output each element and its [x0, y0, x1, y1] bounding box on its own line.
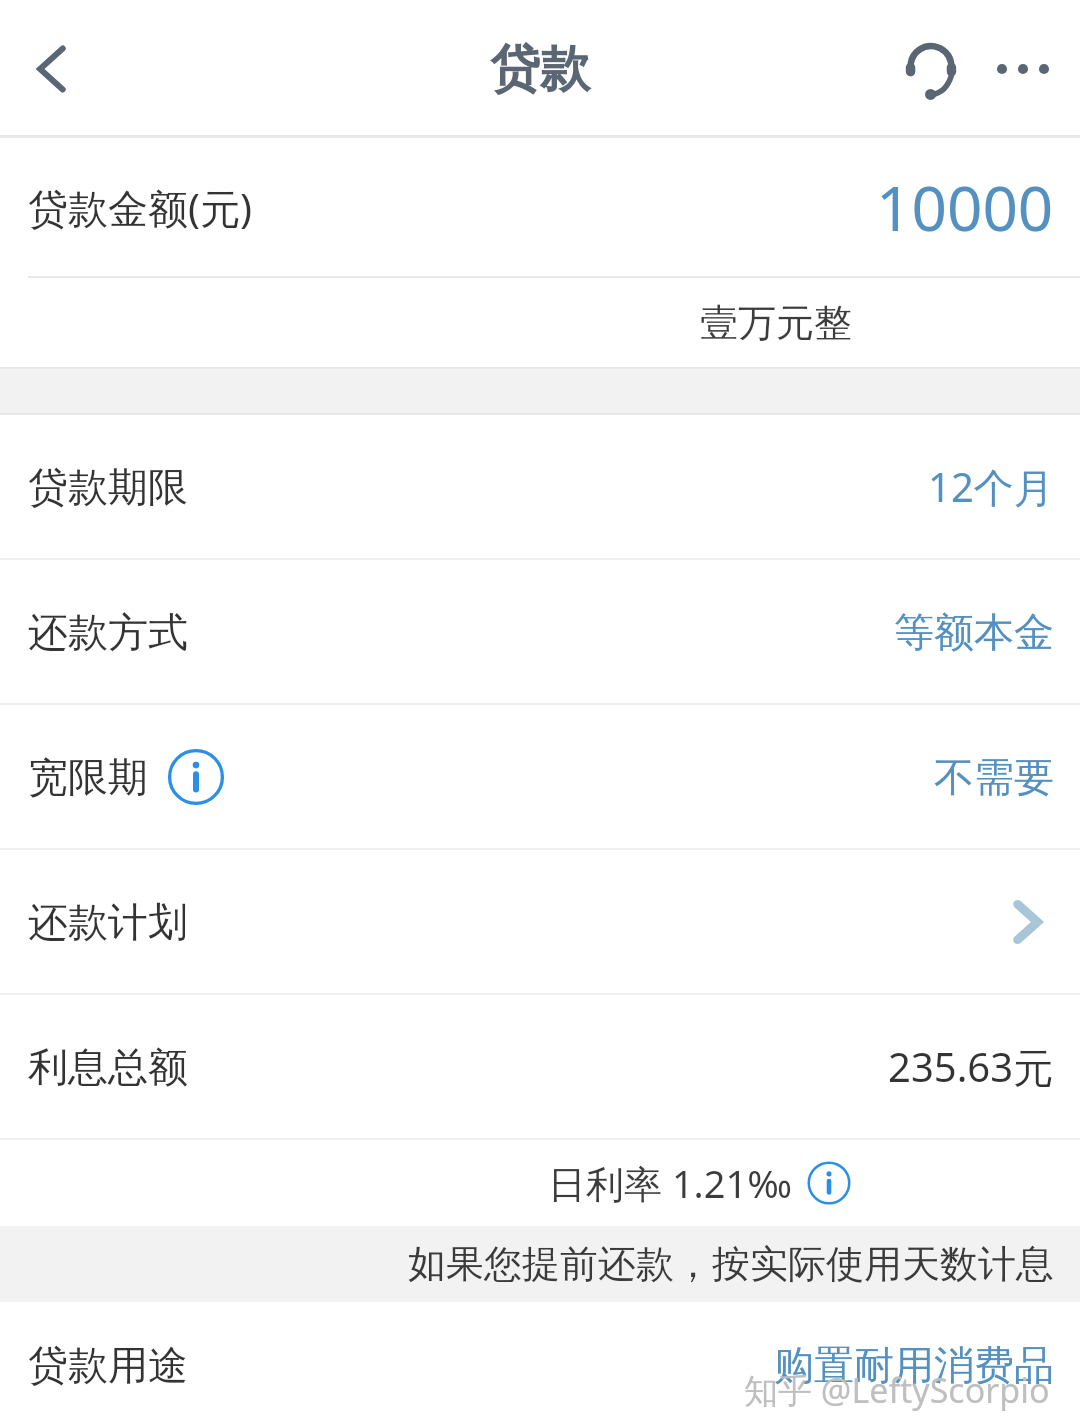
staticText: 还款方式: [28, 607, 188, 657]
staticText: 利息总额: [28, 1042, 188, 1092]
staticText: 不需要: [934, 752, 1054, 802]
button[interactable]: 贷款金额(元): [0, 138, 1080, 276]
staticText: 宽限期: [28, 752, 148, 802]
button[interactable]: 日利率 1.21‰: [0, 1140, 1080, 1226]
staticText: 如果您提前还款，按实际使用天数计息: [408, 1240, 1054, 1288]
button[interactable]: 还款方式: [0, 560, 1080, 703]
button[interactable]: 宽限期: [0, 705, 1080, 848]
staticText: 等额本金: [894, 607, 1054, 657]
button[interactable]: 还款计划: [0, 850, 1080, 993]
button[interactable]: 利息总额: [0, 995, 1080, 1138]
staticText: 购置耐用消费品: [774, 1340, 1054, 1390]
staticText: 贷款用途: [28, 1340, 188, 1390]
button[interactable]: Customer service: [888, 26, 974, 112]
button[interactable]: 贷款期限: [0, 415, 1080, 558]
staticText: 壹万元整: [700, 299, 852, 347]
staticText: 贷款金额(元): [28, 180, 252, 235]
button[interactable]: Back: [8, 24, 98, 114]
staticText: 235.63元: [888, 1039, 1054, 1094]
staticText: 10000: [876, 165, 1054, 249]
button[interactable]: Information: [806, 1160, 852, 1206]
button[interactable]: 贷款用途: [0, 1302, 1080, 1427]
staticText: 贷款: [490, 38, 590, 101]
staticText: 12个月: [928, 459, 1054, 514]
staticText: 日利率 1.21‰: [548, 1157, 792, 1209]
staticText: 贷款期限: [28, 462, 188, 512]
staticText: 知乎 @LeftyScorpio: [744, 1367, 1050, 1413]
staticText: 还款计划: [28, 897, 188, 947]
button[interactable]: More options: [980, 26, 1066, 112]
button[interactable]: Information: [166, 747, 226, 807]
